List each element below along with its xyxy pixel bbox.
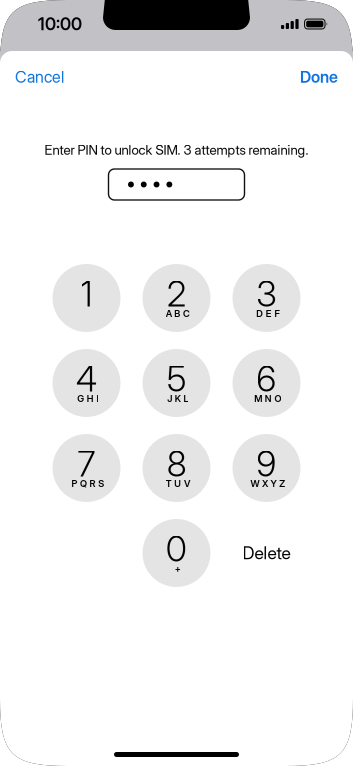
button[interactable]: 7 xyxy=(52,434,120,502)
staticText: Cancel xyxy=(15,67,64,87)
staticText: 10:00 xyxy=(38,13,82,34)
staticText: GHI xyxy=(77,393,98,404)
staticText: DEF xyxy=(256,308,279,319)
staticText: 8 xyxy=(167,443,186,485)
staticText: 6 xyxy=(256,358,276,400)
staticText: 4 xyxy=(76,358,97,400)
button[interactable]: Cancel xyxy=(0,55,74,99)
staticText: MNO xyxy=(254,393,281,404)
button[interactable]: 1 xyxy=(52,264,120,332)
button[interactable]: 8 xyxy=(142,434,210,502)
button[interactable]: 4 xyxy=(52,349,120,417)
staticText: Delete xyxy=(242,542,290,563)
button[interactable]: 0 xyxy=(142,519,210,587)
button[interactable]: 6 xyxy=(232,349,300,417)
staticText: 1 xyxy=(80,273,92,315)
staticText: ABC xyxy=(166,308,190,319)
button[interactable]: 3 xyxy=(232,264,300,332)
button[interactable]: 9 xyxy=(232,434,300,502)
staticText: JKL xyxy=(167,393,188,404)
button[interactable]: Done xyxy=(290,55,353,99)
staticText: Done xyxy=(300,67,338,87)
button[interactable]: Delete xyxy=(232,519,300,587)
staticText: WXYZ xyxy=(250,478,285,489)
button[interactable]: 5 xyxy=(142,349,210,417)
button[interactable]: 2 xyxy=(142,264,210,332)
staticText: 3 xyxy=(256,273,276,315)
staticText: Enter PIN to unlock SIM. 3 attempts rema… xyxy=(44,142,308,158)
staticText: + xyxy=(175,563,181,574)
staticText: 7 xyxy=(77,443,95,485)
staticText: 5 xyxy=(167,358,186,400)
staticText: PQRS xyxy=(71,478,104,489)
staticText: 0 xyxy=(166,528,187,570)
staticText: 9 xyxy=(256,443,276,485)
staticText: TUV xyxy=(166,478,190,489)
staticText: 2 xyxy=(167,273,186,315)
